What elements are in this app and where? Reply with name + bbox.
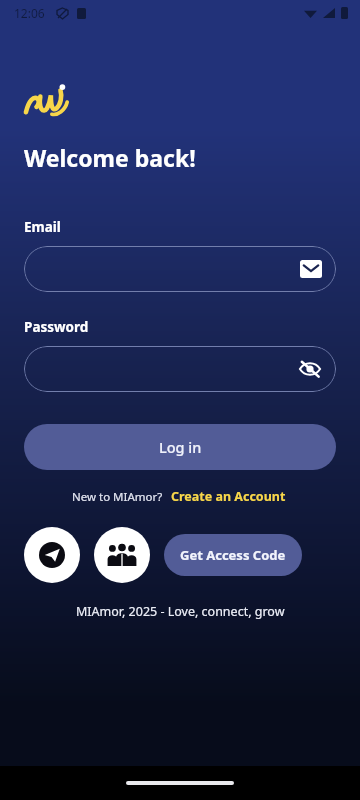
staticText: Welcome back! [24,142,196,173]
button[interactable]: Email field [24,246,336,292]
staticText: Log in [159,437,202,457]
staticText: Get Access Code [180,546,286,564]
staticText: MIAmor, 2025 - Love, connect, grow [76,603,285,620]
staticText: Email [24,218,61,236]
button[interactable]: Get Access Code [164,534,302,576]
button[interactable]: Create an Account [169,486,288,507]
button[interactable]: Password field [24,346,336,392]
staticText: 12:06 [14,5,45,21]
staticText: Create an Account [171,488,286,505]
staticText: Password [24,318,89,336]
button[interactable]: Community [94,527,150,583]
staticText: New to MIAmor? [72,489,163,505]
button[interactable]: Telegram [24,527,80,583]
button[interactable]: Log in [24,424,336,470]
